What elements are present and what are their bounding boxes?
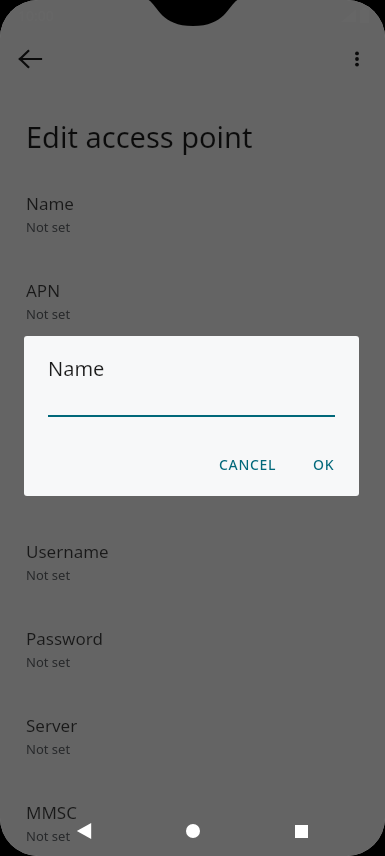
button[interactable]: Password — [0, 584, 385, 671]
staticText: APN — [26, 279, 61, 302]
staticText: OK — [313, 455, 335, 474]
button[interactable]: Port — [0, 410, 385, 497]
staticText: Edit access point — [26, 117, 253, 156]
staticText: Server — [26, 714, 78, 737]
staticText: Not set — [26, 305, 71, 323]
button[interactable]: Username — [0, 497, 385, 584]
staticText: Not set — [26, 653, 71, 671]
staticText: Name — [26, 192, 74, 215]
staticText: MMSC — [26, 801, 77, 824]
button[interactable]: Back — [60, 807, 108, 855]
button[interactable]: MMSC — [0, 758, 385, 845]
staticText: Not set — [26, 479, 71, 497]
button[interactable]: OK — [303, 447, 345, 482]
button[interactable]: Server — [0, 671, 385, 758]
staticText: CANCEL — [219, 455, 277, 474]
button[interactable]: More options — [335, 37, 379, 81]
button[interactable]: APN — [0, 236, 385, 323]
staticText: Proxy — [26, 366, 71, 389]
button[interactable]: Name — [0, 184, 385, 236]
button[interactable]: Home — [169, 807, 217, 855]
staticText: Not set — [26, 218, 71, 236]
staticText: Not set — [26, 827, 71, 845]
staticText: Not set — [26, 740, 71, 758]
staticText: Password — [26, 627, 103, 650]
staticText: Username — [26, 540, 109, 563]
button[interactable]: Recent apps — [277, 807, 325, 855]
button[interactable]: Proxy — [0, 323, 385, 410]
staticText: Not set — [26, 566, 71, 584]
button[interactable]: CANCEL — [209, 447, 287, 482]
button[interactable]: Navigate up — [8, 37, 52, 81]
staticText: Name — [48, 355, 105, 382]
